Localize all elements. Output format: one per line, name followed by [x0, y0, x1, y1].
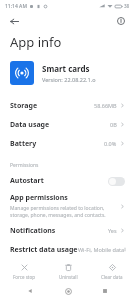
staticText: Battery: [10, 139, 37, 149]
staticText: Autostart: [10, 176, 44, 186]
button[interactable]: Notifications: [0, 221, 135, 240]
staticText: App info: [10, 33, 62, 51]
staticText: 58.66MB: [94, 102, 117, 109]
button[interactable]: Autostart: [0, 171, 135, 191]
button[interactable]: Home: [60, 283, 76, 299]
staticText: Manage permissions related to location, …: [10, 205, 117, 219]
staticText: Yes: [108, 227, 117, 234]
staticText: Restrict data usage: [10, 245, 78, 255]
button[interactable]: App permissions: [0, 191, 135, 221]
staticText: Wi-Fi, Mobile data: [78, 246, 125, 253]
staticText: App permissions: [10, 193, 68, 203]
staticText: Permissions: [10, 162, 39, 169]
staticText: Uninstall: [59, 274, 78, 280]
button[interactable]: Storage: [0, 96, 135, 115]
staticText: Version: 22.08.22.1.o: [42, 76, 96, 83]
button[interactable]: Clear data: [97, 262, 127, 281]
button[interactable]: Battery: [0, 134, 135, 153]
staticText: Storage: [10, 101, 38, 111]
staticText: 38: [124, 3, 130, 9]
button[interactable]: Help: [113, 13, 129, 29]
staticText: 0B: [110, 121, 117, 128]
button[interactable]: Back: [6, 13, 22, 29]
staticText: Data usage: [10, 120, 50, 130]
staticText: Smart cards: [42, 63, 90, 74]
staticText: Notifications: [10, 226, 56, 236]
button[interactable]: Smart cards: [0, 54, 135, 92]
staticText: Clear data: [101, 274, 123, 280]
button[interactable]: Uninstall: [53, 262, 83, 281]
button[interactable]: Force stop: [9, 262, 39, 281]
button[interactable]: Restrict data usage: [0, 240, 135, 259]
button[interactable]: Data usage: [0, 115, 135, 134]
staticText: Force stop: [13, 274, 35, 280]
staticText: 11:14 AM: [5, 3, 27, 10]
button[interactable]: Recents: [97, 283, 113, 299]
staticText: 0.0%: [104, 140, 117, 147]
button[interactable]: Back: [22, 283, 38, 299]
